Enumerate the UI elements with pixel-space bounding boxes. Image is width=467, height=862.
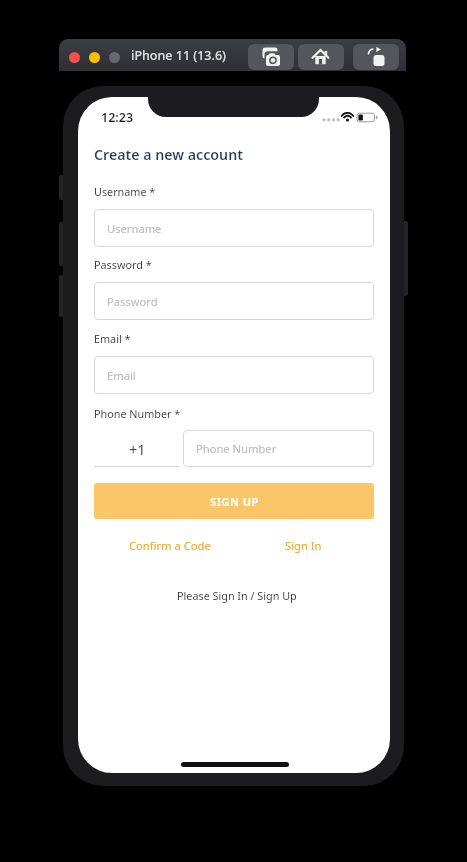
button[interactable]: Email (94, 356, 374, 394)
staticText: Phone Number (196, 441, 277, 456)
button[interactable]: Username (94, 209, 374, 247)
staticText: SIGN UP (210, 494, 259, 509)
button[interactable]: Phone Number (183, 430, 374, 467)
staticText: Email (107, 368, 136, 383)
button[interactable]: Confirm a Code (129, 538, 211, 553)
button[interactable]: SIGN UP (94, 483, 374, 519)
staticText: +1 (129, 439, 146, 459)
staticText: Username (107, 221, 162, 236)
button[interactable] (248, 44, 294, 70)
button[interactable] (353, 44, 399, 70)
button[interactable]: Password (94, 282, 374, 320)
staticText: Password * (94, 257, 152, 272)
staticText: Password (107, 294, 158, 309)
button[interactable]: Sign In (285, 538, 322, 553)
button[interactable]: +1 (94, 430, 180, 467)
button[interactable] (298, 44, 344, 70)
staticText: Phone Number * (94, 406, 181, 421)
staticText: Create a new account (94, 145, 243, 164)
staticText: 12:23 (101, 109, 134, 126)
staticText: Email * (94, 331, 131, 346)
staticText: Please Sign In / Sign Up (177, 588, 297, 603)
staticText: iPhone 11 (13.6) (131, 47, 226, 64)
staticText: Username * (94, 184, 156, 199)
